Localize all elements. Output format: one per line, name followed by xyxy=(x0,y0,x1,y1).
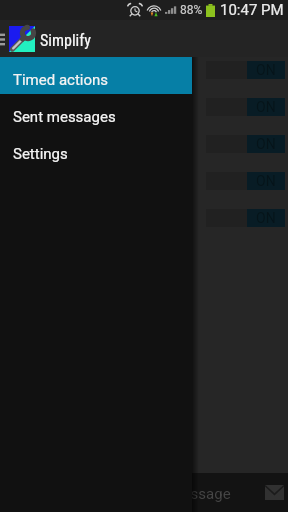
button[interactable]: Settings xyxy=(0,131,192,168)
staticText: 10:47 PM xyxy=(220,1,284,19)
staticText: ON xyxy=(256,62,276,78)
button[interactable]: ON xyxy=(247,135,285,153)
button[interactable]: ON xyxy=(247,98,285,116)
staticText: ON xyxy=(256,136,276,152)
button[interactable]: Sent messages xyxy=(0,94,192,131)
button[interactable]: ON xyxy=(247,172,285,190)
button[interactable]: Timed actions xyxy=(0,57,192,94)
staticText: Settings xyxy=(13,145,68,163)
button[interactable]: Open navigation drawer xyxy=(0,20,9,57)
staticText: ON xyxy=(256,99,276,115)
staticText: ON xyxy=(256,173,276,189)
staticText: Sent messages xyxy=(13,108,116,126)
staticText: 88% xyxy=(180,3,203,17)
button[interactable]: ON xyxy=(247,61,285,79)
button[interactable]: Send message xyxy=(261,473,288,512)
staticText: Simplify xyxy=(40,31,91,50)
staticText: Type a message xyxy=(122,485,231,503)
button[interactable]: ON xyxy=(247,209,285,227)
staticText: ON xyxy=(256,210,276,226)
staticText: Timed actions xyxy=(13,71,109,89)
